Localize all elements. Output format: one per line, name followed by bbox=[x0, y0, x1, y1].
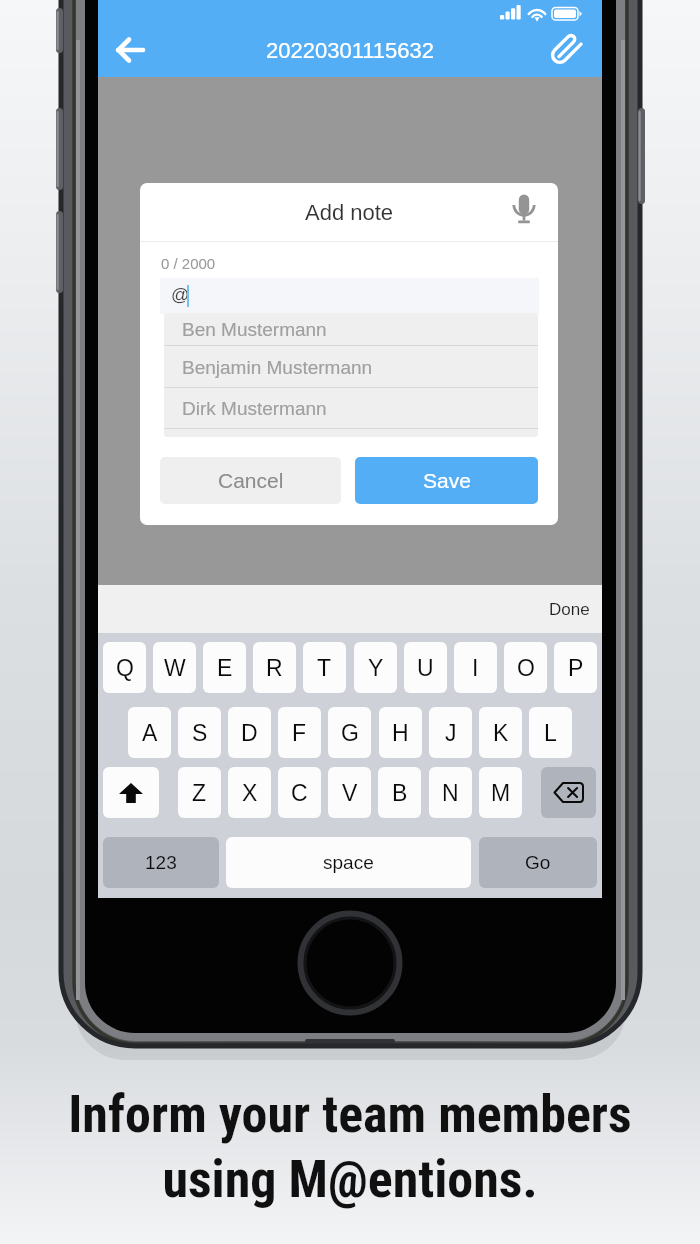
button[interactable]: F bbox=[278, 707, 321, 758]
button[interactable]: X bbox=[228, 767, 271, 818]
staticText: L bbox=[544, 720, 557, 746]
staticText: @ bbox=[171, 285, 190, 305]
staticText: T bbox=[317, 655, 332, 681]
staticText: Dirk Mustermann bbox=[182, 398, 327, 419]
staticText: Go bbox=[525, 852, 551, 873]
staticText: K bbox=[493, 720, 509, 746]
staticText: R bbox=[266, 655, 283, 681]
staticText: D bbox=[241, 720, 258, 746]
button[interactable]: Backspace bbox=[541, 767, 596, 818]
staticText: N bbox=[442, 780, 459, 806]
button[interactable]: Done bbox=[537, 590, 602, 629]
button[interactable]: M bbox=[479, 767, 522, 818]
staticText: Save bbox=[423, 469, 471, 492]
staticText: Inform your team members using M@entions… bbox=[0, 1084, 700, 1209]
button[interactable]: V bbox=[328, 767, 371, 818]
staticText: I bbox=[472, 655, 479, 681]
button[interactable]: Ben Mustermann bbox=[164, 313, 538, 346]
staticText: J bbox=[445, 720, 457, 746]
staticText: X bbox=[242, 780, 258, 806]
staticText: G bbox=[341, 720, 359, 746]
staticText: Q bbox=[116, 655, 134, 681]
button[interactable]: K bbox=[479, 707, 522, 758]
staticText: S bbox=[192, 720, 208, 746]
button[interactable]: I bbox=[454, 642, 497, 693]
staticText: E bbox=[217, 655, 233, 681]
button[interactable]: T bbox=[303, 642, 346, 693]
staticText: Ben Mustermann bbox=[182, 319, 327, 340]
staticText: C bbox=[291, 780, 308, 806]
staticText: A bbox=[142, 720, 158, 746]
button[interactable]: Attach file bbox=[541, 26, 589, 74]
button[interactable]: Benjamin Mustermann bbox=[164, 346, 538, 388]
button[interactable]: H bbox=[379, 707, 422, 758]
staticText: Z bbox=[192, 780, 207, 806]
button[interactable]: Voice input bbox=[503, 188, 545, 230]
button[interactable]: A bbox=[128, 707, 171, 758]
button[interactable]: Go bbox=[479, 837, 597, 888]
button[interactable]: Dirk Mustermann bbox=[164, 388, 538, 429]
button[interactable]: O bbox=[504, 642, 547, 693]
staticText: space bbox=[323, 852, 374, 873]
button[interactable]: Z bbox=[178, 767, 221, 818]
staticText: U bbox=[417, 655, 434, 681]
button[interactable]: U bbox=[404, 642, 447, 693]
staticText: M bbox=[491, 780, 511, 806]
button[interactable]: Back bbox=[106, 26, 154, 74]
button[interactable]: R bbox=[253, 642, 296, 693]
button[interactable]: Q bbox=[103, 642, 146, 693]
button[interactable]: 123 bbox=[103, 837, 219, 888]
button[interactable]: space bbox=[226, 837, 471, 888]
staticText: Benjamin Mustermann bbox=[182, 357, 373, 378]
button[interactable]: N bbox=[429, 767, 472, 818]
button[interactable]: C bbox=[278, 767, 321, 818]
button[interactable]: S bbox=[178, 707, 221, 758]
button[interactable]: Cancel bbox=[160, 457, 341, 504]
button[interactable]: E bbox=[203, 642, 246, 693]
staticText: Add note bbox=[305, 200, 394, 225]
staticText: O bbox=[517, 655, 535, 681]
button[interactable]: Y bbox=[354, 642, 397, 693]
staticText: P bbox=[568, 655, 584, 681]
staticText: 123 bbox=[145, 852, 177, 873]
button[interactable]: Save bbox=[355, 457, 538, 504]
button[interactable]: J bbox=[429, 707, 472, 758]
button[interactable]: D bbox=[228, 707, 271, 758]
staticText: B bbox=[392, 780, 408, 806]
staticText: 0 / 2000 bbox=[161, 255, 216, 272]
staticText: Cancel bbox=[218, 469, 284, 492]
staticText: W bbox=[164, 655, 186, 681]
button[interactable]: P bbox=[554, 642, 597, 693]
staticText: 20220301115632 bbox=[266, 38, 435, 63]
button[interactable]: B bbox=[378, 767, 421, 818]
button[interactable]: Shift bbox=[103, 767, 159, 818]
button[interactable]: L bbox=[529, 707, 572, 758]
staticText: Done bbox=[549, 600, 590, 619]
staticText: V bbox=[342, 780, 358, 806]
staticText: H bbox=[392, 720, 409, 746]
button[interactable]: W bbox=[153, 642, 196, 693]
button[interactable]: G bbox=[328, 707, 371, 758]
staticText: F bbox=[292, 720, 307, 746]
staticText: Y bbox=[368, 655, 384, 681]
